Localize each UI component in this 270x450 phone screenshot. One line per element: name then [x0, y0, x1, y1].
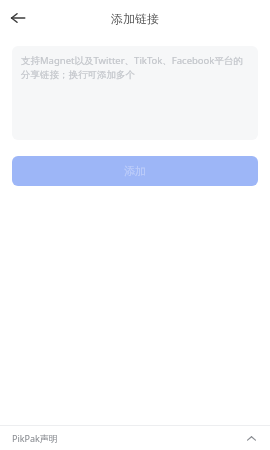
button[interactable]: 支持Magnet以及Twitter、TikTok、Facebook平台的分享链接…	[12, 46, 258, 140]
staticText: 添加	[124, 164, 146, 178]
button[interactable]: 添加	[12, 156, 258, 186]
button[interactable]: Back	[0, 0, 36, 36]
staticText: PikPak声明	[12, 432, 58, 444]
staticText: 添加链接	[111, 11, 159, 26]
other: Expand	[244, 431, 258, 445]
button[interactable]: PikPak声明	[0, 426, 270, 450]
staticText: 支持Magnet以及Twitter、TikTok、Facebook平台的分享链接…	[21, 54, 249, 81]
